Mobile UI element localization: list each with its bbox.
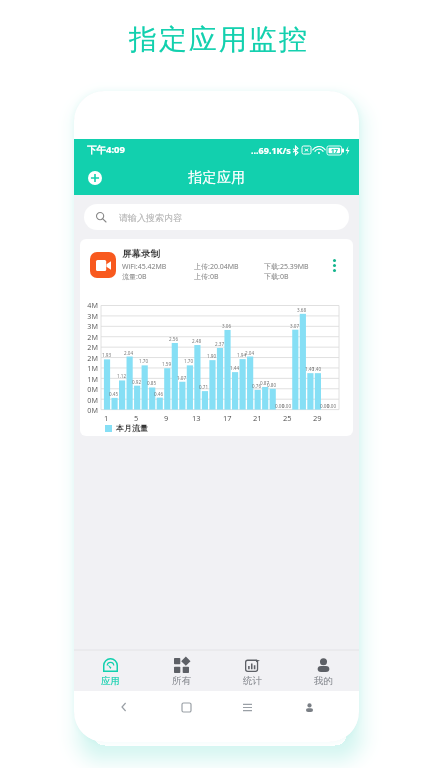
- staticText: 0.00: [275, 403, 285, 409]
- staticText: 屏幕录制: [122, 248, 160, 260]
- staticText: 2.56: [169, 336, 179, 342]
- staticText: 2.04: [245, 350, 255, 356]
- staticText: 3M: [80, 311, 98, 321]
- button[interactable]: Home: [174, 695, 198, 719]
- staticText: 2.37: [215, 341, 225, 347]
- button[interactable]: 应用: [74, 650, 146, 687]
- staticText: 1.07: [177, 375, 187, 381]
- staticText: 13: [192, 413, 201, 423]
- button[interactable]: 统计: [217, 650, 288, 687]
- staticText: 2.04: [124, 350, 134, 356]
- staticText: 2M: [80, 342, 98, 352]
- staticText: 0.45: [109, 391, 119, 397]
- staticText: 1M: [80, 363, 98, 373]
- button[interactable]: 请输入搜索内容: [84, 204, 349, 230]
- button[interactable]: Recents: [235, 695, 259, 719]
- staticText: 1M: [80, 374, 98, 384]
- staticText: 25: [283, 413, 292, 423]
- staticText: 3.68: [297, 307, 307, 313]
- staticText: 1.70: [139, 358, 149, 364]
- staticText: 5: [134, 413, 139, 423]
- staticText: 应用: [101, 675, 120, 687]
- staticText: 17: [331, 147, 338, 155]
- staticText: 2.48: [192, 338, 202, 344]
- staticText: 1.12: [117, 373, 127, 379]
- staticText: 0M: [80, 405, 98, 415]
- staticText: 下午4:09: [87, 143, 125, 156]
- staticText: 上传:0B: [194, 272, 219, 282]
- staticText: 3.07: [290, 323, 300, 329]
- staticText: 1.40: [312, 366, 322, 372]
- staticText: 1.93: [102, 352, 112, 358]
- staticText: 2M: [80, 353, 98, 363]
- button[interactable]: 所有: [146, 650, 217, 687]
- staticText: 1.90: [207, 353, 217, 359]
- staticText: 1.44: [230, 365, 240, 371]
- staticText: 17: [223, 413, 232, 423]
- staticText: 1.59: [162, 361, 172, 367]
- staticText: 所有: [172, 675, 191, 687]
- button[interactable]: Back: [112, 695, 136, 719]
- staticText: 我的: [314, 675, 333, 687]
- staticText: ...69.1K/s: [251, 144, 291, 156]
- staticText: 流量:0B: [122, 272, 147, 282]
- button[interactable]: 屏幕录制: [80, 239, 353, 290]
- staticText: 1: [104, 413, 109, 423]
- staticText: 3.06: [222, 323, 232, 329]
- staticText: 0.92: [132, 379, 142, 385]
- button[interactable]: More options: [325, 256, 343, 274]
- staticText: 1.70: [184, 358, 194, 364]
- staticText: 0M: [80, 395, 98, 405]
- staticText: 29: [313, 413, 322, 423]
- staticText: 4M: [80, 300, 98, 310]
- staticText: 0.00: [320, 403, 330, 409]
- staticText: 9: [164, 413, 169, 423]
- staticText: 0.00: [282, 403, 292, 409]
- staticText: 0.00: [327, 403, 337, 409]
- staticText: 下载:0B: [264, 272, 289, 282]
- staticText: 1.40: [305, 366, 315, 372]
- staticText: 本月流量: [116, 423, 148, 433]
- staticText: 1.94: [237, 352, 247, 358]
- staticText: 统计: [243, 675, 262, 687]
- staticText: 指定应用监控: [129, 22, 309, 57]
- staticText: 指定应用: [188, 169, 246, 187]
- staticText: 0M: [80, 384, 98, 394]
- staticText: 0.46: [154, 391, 164, 397]
- staticText: 0.87: [260, 380, 270, 386]
- staticText: 下载:25.39MB: [264, 262, 309, 272]
- button[interactable]: 我的: [288, 650, 359, 687]
- staticText: 0.71: [199, 384, 209, 390]
- staticText: 0.85: [147, 380, 157, 386]
- staticText: 2M: [80, 332, 98, 342]
- staticText: 0.76: [252, 383, 262, 389]
- staticText: WiFi:45.42MB: [122, 262, 167, 272]
- staticText: 3M: [80, 321, 98, 331]
- staticText: 0.80: [267, 382, 277, 388]
- button[interactable]: Accessibility: [297, 695, 321, 719]
- button[interactable]: Add: [85, 168, 105, 188]
- staticText: 请输入搜索内容: [119, 212, 182, 223]
- staticText: 21: [253, 413, 262, 423]
- staticText: 上传:20.04MB: [194, 262, 239, 272]
